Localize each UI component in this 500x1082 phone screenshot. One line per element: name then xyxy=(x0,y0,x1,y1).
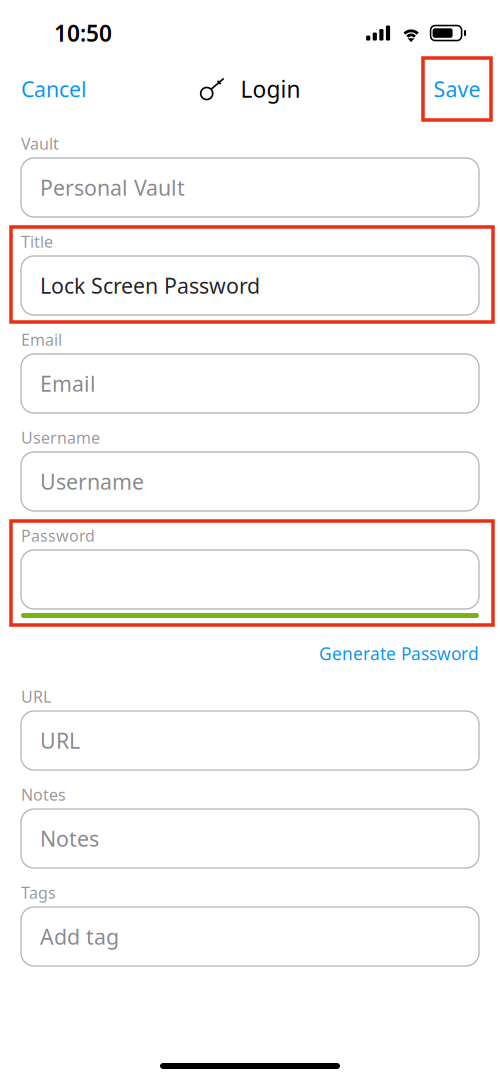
button[interactable]: Generate Password xyxy=(21,635,479,672)
staticText: Username xyxy=(21,427,100,448)
staticText: Notes xyxy=(40,824,99,853)
staticText: Email xyxy=(40,369,96,398)
staticText: Username xyxy=(40,467,144,496)
staticText: Add tag xyxy=(40,922,119,951)
staticText: Tags xyxy=(21,882,56,903)
staticText: Title xyxy=(21,231,53,252)
staticText: Notes xyxy=(21,784,66,805)
button[interactable]: Cancel xyxy=(21,67,87,111)
staticText: Save xyxy=(433,75,480,103)
staticText: Password xyxy=(21,525,95,546)
staticText: Generate Password xyxy=(319,642,479,665)
staticText: URL xyxy=(21,686,51,707)
staticText: Personal Vault xyxy=(40,173,185,202)
staticText: Login xyxy=(240,74,300,104)
staticText: Vault xyxy=(21,133,59,154)
staticText: Email xyxy=(21,329,62,350)
staticText: Cancel xyxy=(21,75,87,103)
button[interactable]: Save xyxy=(423,58,491,120)
staticText: URL xyxy=(40,726,80,755)
staticText: Lock Screen Password xyxy=(40,271,260,300)
staticText: 10:50 xyxy=(54,18,112,48)
